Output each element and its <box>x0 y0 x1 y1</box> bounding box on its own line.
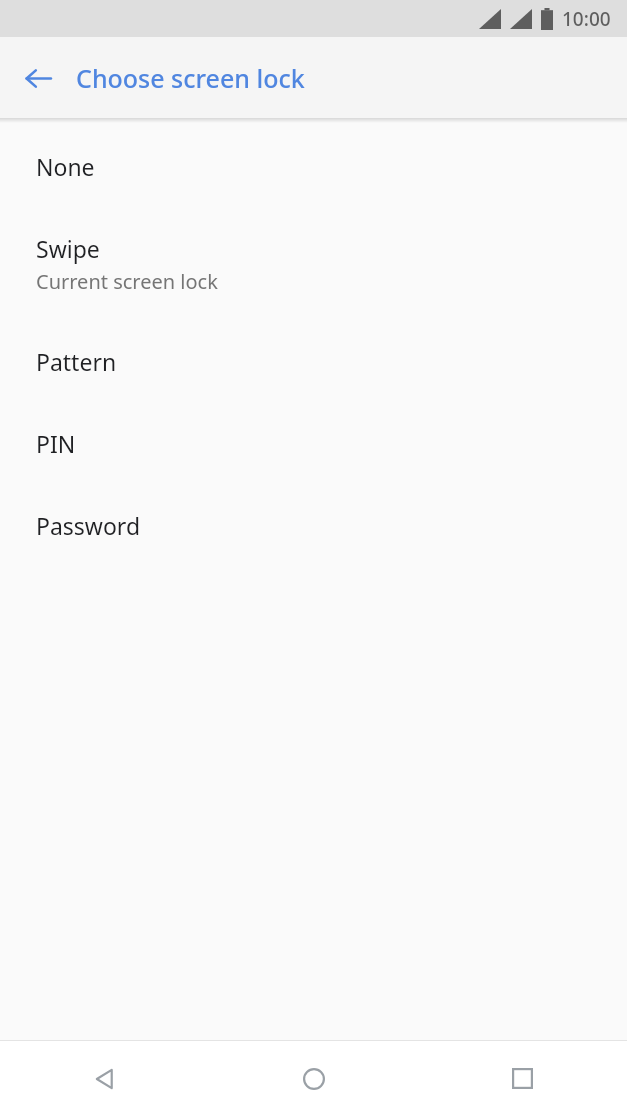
staticText: Current screen lock <box>36 268 218 295</box>
staticText: Pattern <box>36 346 117 377</box>
staticText: PIN <box>36 428 76 459</box>
staticText: 10:00 <box>562 6 611 32</box>
button[interactable]: PIN <box>0 417 627 499</box>
button[interactable]: Back <box>10 50 66 106</box>
button[interactable]: Home <box>209 1041 418 1116</box>
button[interactable]: Back <box>0 1041 209 1116</box>
button[interactable]: Pattern <box>0 335 627 417</box>
staticText: None <box>36 151 95 182</box>
staticText: Choose screen lock <box>76 61 305 95</box>
button[interactable]: Swipe <box>0 222 627 335</box>
button[interactable]: None <box>0 140 627 222</box>
button[interactable]: Recent apps <box>418 1041 627 1116</box>
staticText: Swipe <box>36 233 100 264</box>
staticText: Password <box>36 510 141 541</box>
button[interactable]: Password <box>0 499 627 581</box>
